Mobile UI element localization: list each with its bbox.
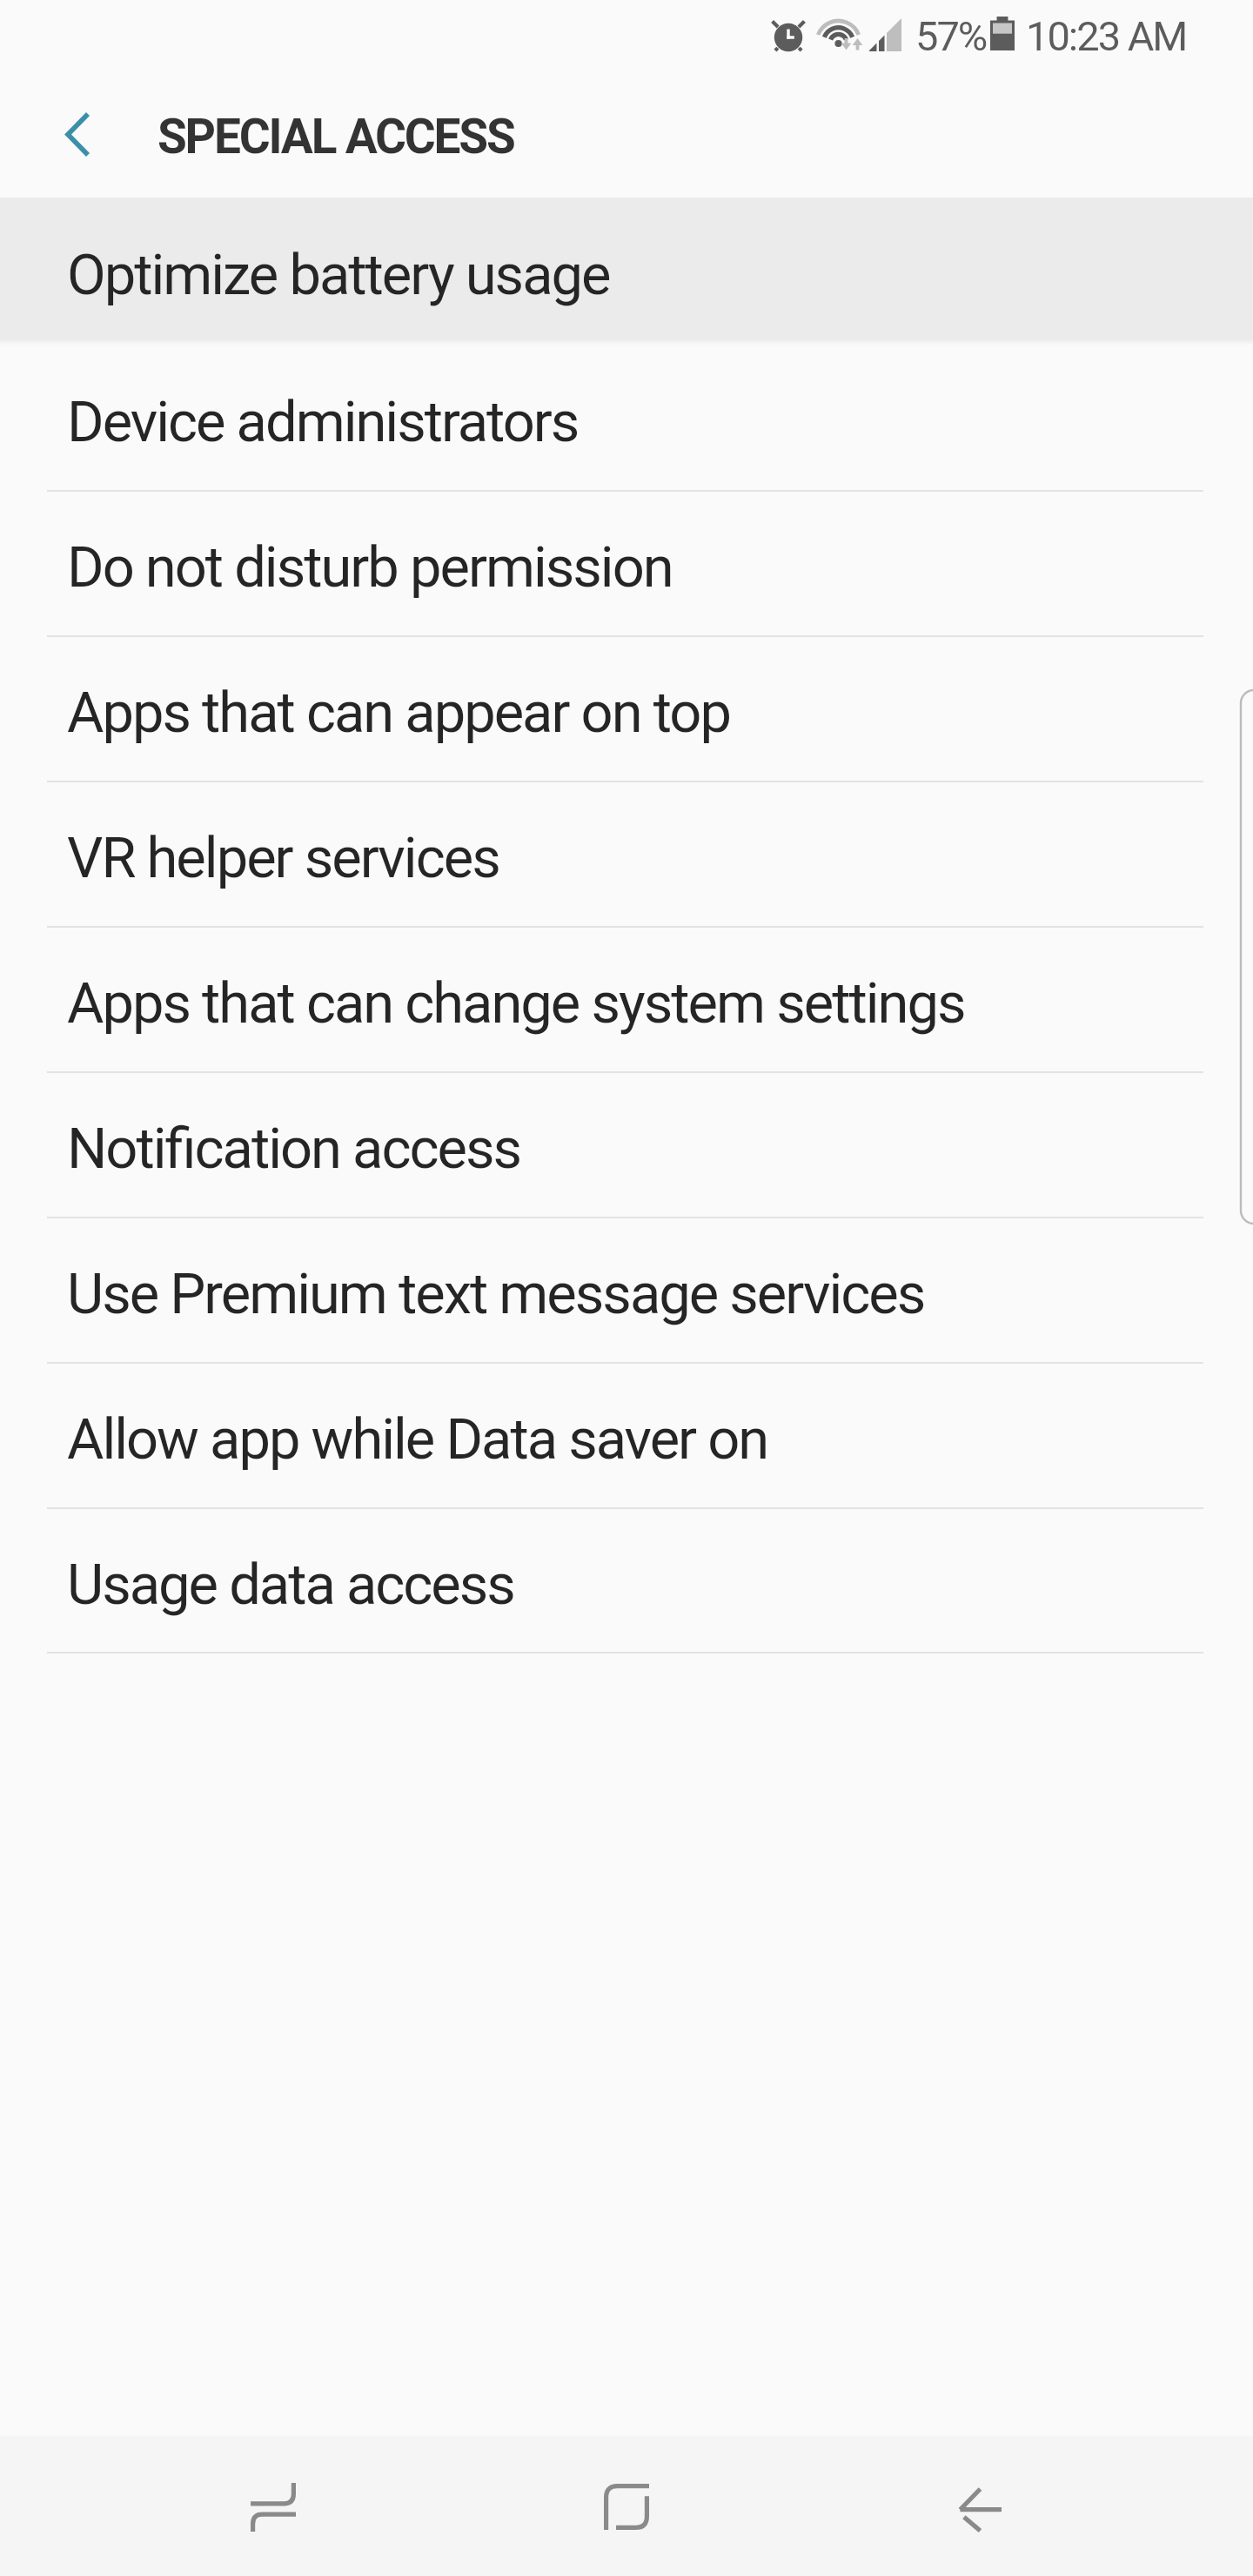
staticText: Notification access xyxy=(67,1116,521,1182)
button[interactable]: Notification access xyxy=(0,1072,1253,1218)
button[interactable]: Home xyxy=(450,2436,803,2576)
staticText: Allow app while Data saver on xyxy=(67,1406,768,1472)
button[interactable]: VR helper services xyxy=(0,782,1253,927)
staticText: 57% xyxy=(915,12,987,60)
button[interactable]: Navigate up xyxy=(23,89,110,186)
button[interactable]: Optimize battery usage xyxy=(0,198,1253,345)
staticText: Use Premium text message services xyxy=(67,1261,925,1327)
button[interactable]: Back xyxy=(803,2436,1156,2576)
button[interactable]: Apps that can change system settings xyxy=(0,927,1253,1072)
staticText: Optimize battery usage xyxy=(67,242,610,308)
staticText: Do not disturb permission xyxy=(67,534,673,600)
staticText: VR helper services xyxy=(67,825,499,891)
button[interactable]: Recent apps xyxy=(97,2436,450,2576)
button[interactable]: Device administrators xyxy=(0,345,1253,491)
staticText: Usage data access xyxy=(67,1552,514,1618)
button[interactable]: Do not disturb permission xyxy=(0,491,1253,636)
staticText: Apps that can appear on top xyxy=(67,680,730,746)
staticText: Device administrators xyxy=(67,389,579,455)
button[interactable]: Usage data access xyxy=(0,1508,1253,1654)
staticText: 10:23 AM xyxy=(1026,12,1187,60)
button[interactable]: Allow app while Data saver on xyxy=(0,1363,1253,1508)
button[interactable]: Apps that can appear on top xyxy=(0,636,1253,782)
button[interactable]: Use Premium text message services xyxy=(0,1218,1253,1363)
staticText: SPECIAL ACCESS xyxy=(157,109,514,164)
staticText: Apps that can change system settings xyxy=(67,970,965,1036)
